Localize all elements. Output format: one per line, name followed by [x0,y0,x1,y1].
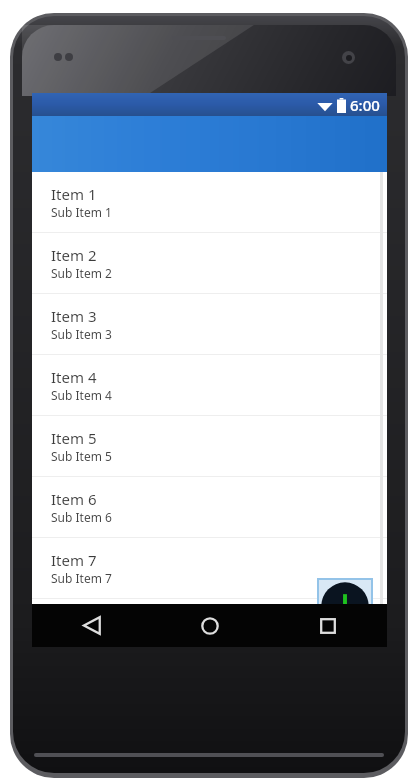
button[interactable]: Item 1 [32,172,387,232]
staticText: Sub Item 6 [51,509,112,525]
button[interactable]: Item 5 [32,416,387,476]
button[interactable]: Home [151,604,269,647]
staticText: Sub Item 2 [51,265,112,281]
button[interactable]: Item 6 [32,477,387,537]
staticText: 6:00 [350,95,380,115]
staticText: Sub Item 5 [51,448,112,464]
button[interactable]: Add [318,579,372,633]
staticText: Sub Item 1 [51,204,112,220]
staticText: Item 5 [51,428,97,448]
button[interactable]: Back [32,604,151,647]
button[interactable]: Item 3 [32,294,387,354]
staticText: Item 4 [51,367,97,387]
staticText: Item 2 [51,245,97,265]
staticText: Item 1 [51,184,97,204]
staticText: Sub Item 7 [51,570,112,586]
staticText: Item 6 [51,489,97,509]
button[interactable]: Item 7 [32,538,387,598]
staticText: Sub Item 3 [51,326,112,342]
button[interactable]: Item 4 [32,355,387,415]
staticText: Item 3 [51,306,97,326]
staticText: Item 7 [51,550,97,570]
button[interactable]: Item 2 [32,233,387,293]
button[interactable]: Item 8 [32,599,387,604]
staticText: Sub Item 4 [51,387,112,403]
button[interactable]: Recent apps [269,604,387,647]
